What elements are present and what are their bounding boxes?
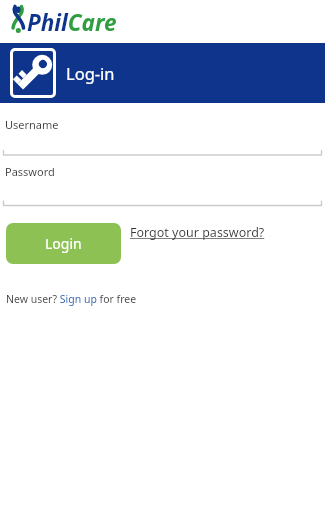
button[interactable]: New user? Sign up for free (6, 292, 137, 306)
staticText: PhilCare (27, 7, 117, 38)
staticText: Password (5, 164, 55, 179)
staticText: Log-in (66, 62, 115, 84)
staticText: Login (45, 234, 82, 253)
button[interactable]: Login (6, 223, 121, 264)
staticText: Username (5, 117, 59, 132)
button[interactable] (3, 130, 322, 156)
button[interactable] (3, 180, 322, 206)
button[interactable]: Forgot your password? (130, 224, 265, 241)
